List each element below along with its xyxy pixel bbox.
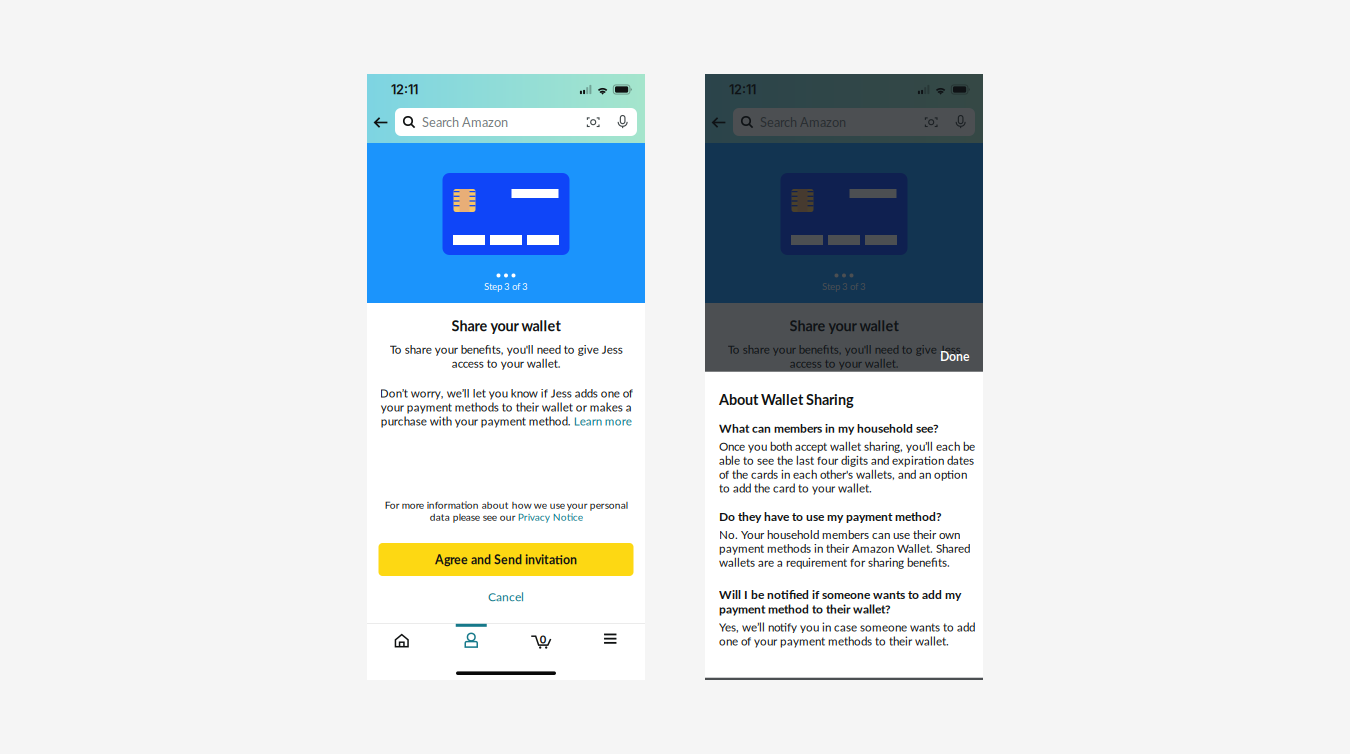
staticText: Do they have to use my payment method? — [719, 509, 942, 523]
button[interactable]: Account — [436, 624, 506, 657]
staticText: Step 3 of 3 — [822, 280, 866, 292]
button[interactable]: Cart — [506, 624, 575, 657]
staticText: Don’t worry, we’ll let you know if Jess … — [717, 386, 970, 428]
staticText: For more information about how we use yo… — [384, 499, 627, 523]
button[interactable]: Account — [774, 624, 844, 657]
staticText: To share your benefits, you'll need to g… — [389, 342, 622, 370]
button[interactable]: Home — [367, 624, 436, 657]
staticText: Done — [940, 349, 970, 364]
button[interactable]: Back — [705, 108, 733, 136]
staticText: Will I be notified if someone wants to a… — [719, 587, 961, 616]
button[interactable]: Agree and Send invitation — [378, 543, 633, 576]
staticText: To share your benefits, you'll need to g… — [727, 342, 960, 370]
staticText: 12:11 — [391, 82, 418, 97]
staticText: Agree and Send invitation — [435, 552, 577, 567]
staticText: Yes, we’ll notify you in case someone wa… — [719, 620, 975, 648]
staticText: Once you both accept wallet sharing, you… — [719, 439, 975, 495]
button[interactable]: Done — [927, 345, 983, 368]
button[interactable]: Cart — [844, 624, 913, 657]
button[interactable]: Agree and Send invitation — [716, 543, 971, 576]
staticText: About Wallet Sharing — [719, 391, 854, 408]
staticText: Search Amazon — [760, 114, 846, 130]
staticText: Step 3 of 3 — [484, 280, 528, 292]
staticText: Share your wallet — [789, 317, 898, 334]
staticText: 0 — [878, 632, 884, 646]
staticText: Cancel — [826, 589, 862, 604]
staticText: Don’t worry, we’ll let you know if Jess … — [379, 386, 632, 428]
button[interactable]: Menu — [575, 624, 645, 657]
staticText: 0 — [540, 632, 546, 646]
button[interactable]: Cancel — [378, 588, 633, 605]
button[interactable]: Search Amazon — [733, 108, 975, 136]
staticText: Search Amazon — [422, 114, 508, 130]
staticText: Cancel — [488, 589, 524, 604]
staticText: For more information about how we use yo… — [722, 499, 965, 523]
staticText: 12:11 — [729, 82, 756, 97]
button[interactable]: Back — [367, 108, 395, 136]
staticText: What can members in my household see? — [719, 421, 939, 435]
button[interactable]: Cancel — [716, 588, 971, 605]
staticText: No. Your household members can use their… — [719, 527, 970, 569]
button[interactable]: Search Amazon — [395, 108, 637, 136]
staticText: Agree and Send invitation — [773, 552, 915, 567]
button[interactable]: Home — [705, 624, 774, 657]
button[interactable]: Menu — [913, 624, 983, 657]
staticText: Share your wallet — [451, 317, 560, 334]
